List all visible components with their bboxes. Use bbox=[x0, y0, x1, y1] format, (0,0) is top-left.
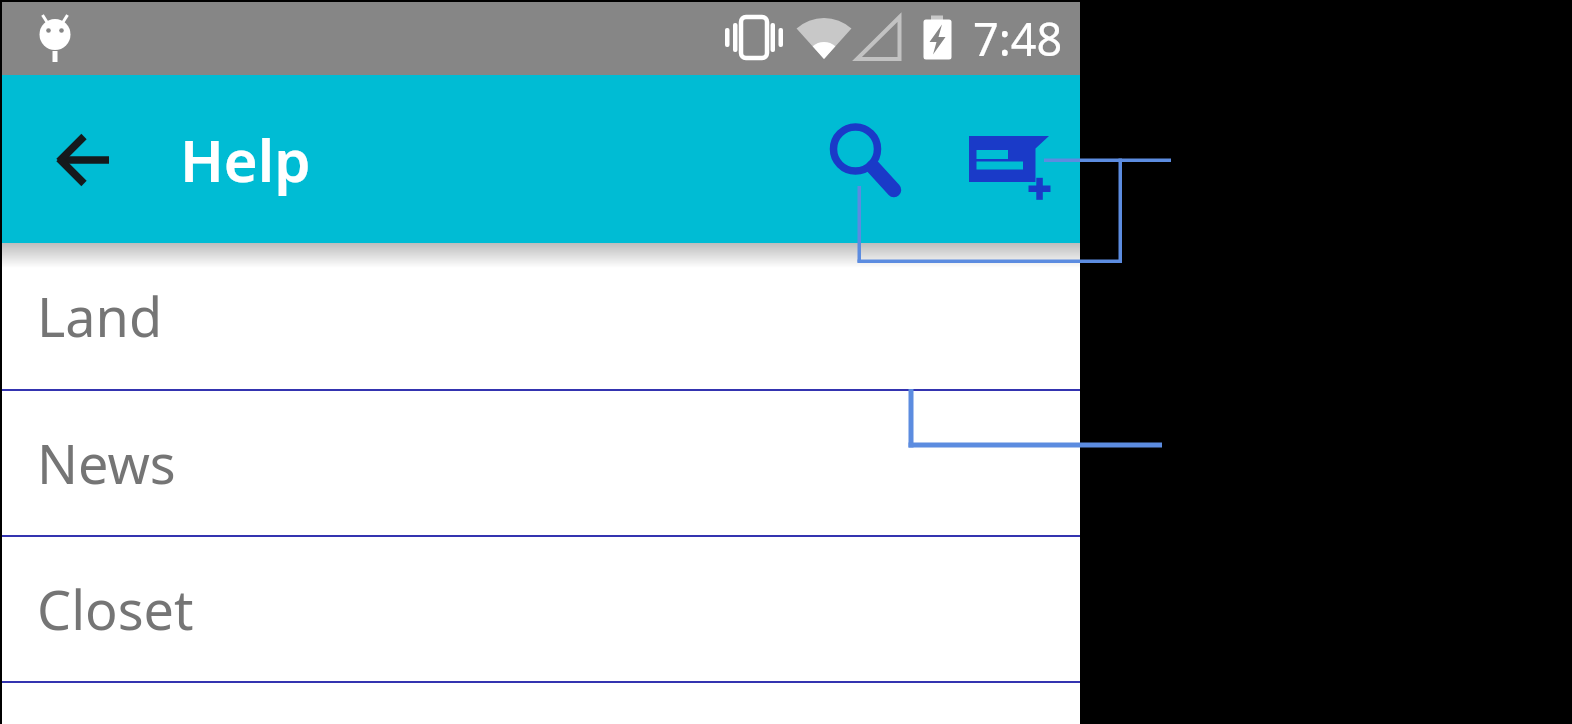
staticText: Closet bbox=[37, 572, 194, 646]
button[interactable]: Land bbox=[0, 243, 1080, 389]
staticText: Land bbox=[37, 279, 163, 353]
staticText: News bbox=[37, 426, 176, 500]
button[interactable]: News bbox=[0, 391, 1080, 535]
button[interactable] bbox=[960, 101, 1060, 201]
button[interactable] bbox=[808, 101, 904, 197]
staticText: 7:48 bbox=[973, 8, 1063, 69]
staticText: Help bbox=[180, 120, 311, 199]
button[interactable] bbox=[37, 112, 133, 208]
button[interactable]: Closet bbox=[0, 537, 1080, 681]
